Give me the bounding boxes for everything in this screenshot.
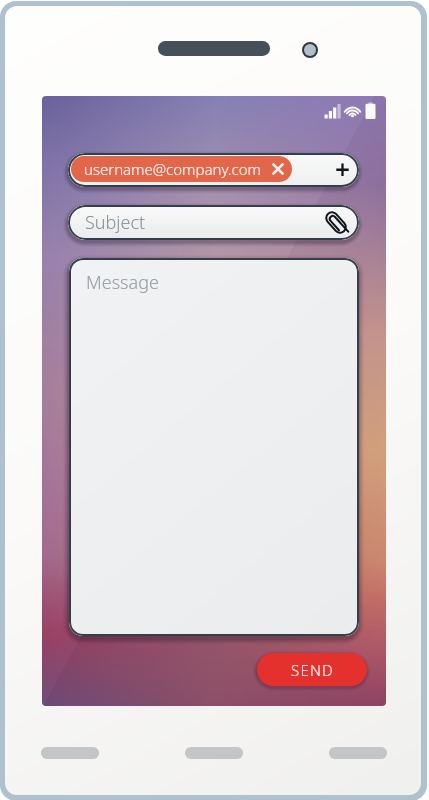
- button[interactable]: Recents: [329, 747, 387, 759]
- button[interactable]: Subject: [68, 205, 359, 240]
- button[interactable]: Add recipient: [326, 153, 359, 187]
- staticText: Message: [86, 270, 159, 295]
- button[interactable]: Home: [185, 747, 243, 759]
- button[interactable]: SEND: [257, 653, 367, 686]
- staticText: Subject: [85, 210, 146, 235]
- staticText: username@company.com: [84, 159, 261, 179]
- button[interactable]: username@company.com: [71, 156, 292, 182]
- button[interactable]: Message: [69, 258, 359, 636]
- button[interactable]: username@company.com: [68, 153, 359, 187]
- staticText: SEND: [291, 660, 334, 680]
- button[interactable]: Back: [41, 747, 99, 759]
- other: Attach file: [325, 210, 347, 235]
